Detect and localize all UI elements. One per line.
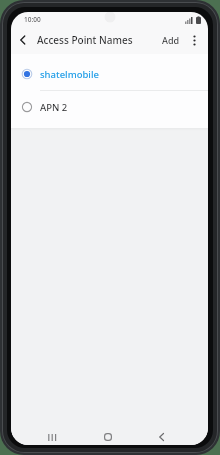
- staticText: Access Point Names: [37, 33, 133, 47]
- staticText: 10:00: [24, 15, 41, 24]
- button[interactable]: Add: [158, 28, 184, 52]
- staticText: shatelmobile: [40, 68, 99, 81]
- button[interactable]: [44, 429, 60, 445]
- button[interactable]: APN 2: [11, 91, 208, 123]
- button[interactable]: [153, 429, 169, 445]
- staticText: APN 2: [40, 101, 68, 114]
- button[interactable]: [184, 28, 204, 52]
- button[interactable]: [100, 429, 116, 445]
- button[interactable]: shatelmobile: [11, 58, 208, 90]
- button[interactable]: [11, 28, 35, 52]
- staticText: Add: [162, 34, 180, 46]
